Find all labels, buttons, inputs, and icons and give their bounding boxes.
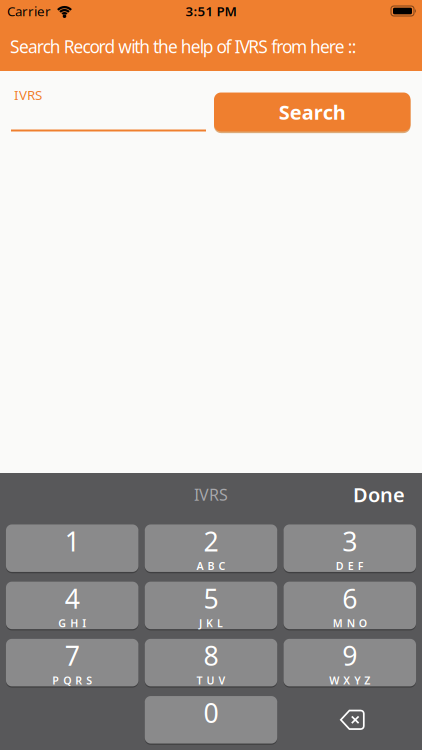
- button[interactable]: 6: [284, 582, 416, 629]
- staticText: IVRS: [194, 484, 228, 505]
- staticText: [71, 559, 74, 573]
- staticText: IVRS: [14, 86, 42, 104]
- button[interactable]: 8: [145, 639, 277, 686]
- button[interactable]: 7: [6, 639, 138, 686]
- staticText: 8: [203, 638, 218, 673]
- staticText: G H I: [58, 616, 86, 630]
- button[interactable]: 0: [145, 696, 277, 744]
- staticText: 5: [203, 581, 218, 616]
- button[interactable]: IVRS text field: [11, 86, 206, 131]
- staticText: 3: [342, 523, 357, 559]
- staticText: 0: [203, 695, 218, 730]
- staticText: Search: [279, 99, 346, 125]
- button[interactable]: 3: [284, 524, 416, 572]
- button[interactable]: 2: [145, 524, 277, 572]
- staticText: M N O: [333, 616, 367, 630]
- staticText: W X Y Z: [329, 673, 370, 687]
- staticText: Done: [353, 481, 405, 508]
- button[interactable]: Done: [353, 471, 405, 517]
- button[interactable]: 9: [284, 639, 416, 686]
- staticText: 1: [65, 523, 80, 559]
- button[interactable]: Search: [214, 92, 410, 131]
- staticText: 6: [342, 581, 357, 616]
- staticText: 2: [203, 523, 218, 559]
- staticText: J K L: [199, 616, 223, 630]
- staticText: [209, 730, 212, 745]
- staticText: 3:51 PM: [185, 2, 236, 20]
- staticText: 9: [342, 638, 357, 673]
- button[interactable]: 1: [6, 524, 138, 572]
- staticText: Carrier: [7, 2, 51, 20]
- staticText: T U V: [196, 673, 225, 687]
- staticText: A B C: [196, 559, 225, 573]
- button[interactable]: Delete: [284, 696, 416, 744]
- button[interactable]: 5: [145, 582, 277, 629]
- staticText: D E F: [336, 559, 364, 573]
- staticText: Search Record with the help of IVRS from…: [10, 35, 357, 58]
- button[interactable]: 4: [6, 582, 138, 629]
- staticText: P Q R S: [52, 673, 92, 687]
- staticText: 4: [65, 581, 80, 616]
- staticText: 7: [65, 638, 80, 673]
